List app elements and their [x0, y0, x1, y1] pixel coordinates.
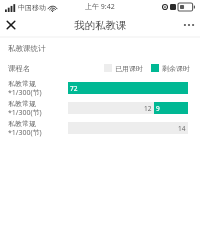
staticText: 私教常规*1/300(节) — [8, 119, 64, 138]
staticText: 12 — [144, 104, 152, 113]
staticText: 私教课统计 — [8, 44, 46, 53]
button[interactable]: 私教常规*1/300(节) — [0, 118, 200, 138]
staticText: 剩余课时 — [162, 64, 190, 73]
button[interactable]: 私教常规*1/300(节) — [0, 78, 200, 98]
button[interactable]: 私教常规*1/300(节) — [0, 98, 200, 118]
staticText: 中国移动 — [18, 3, 46, 12]
button[interactable]: Close — [0, 14, 22, 36]
staticText: 私教常规*1/300(节) — [8, 99, 64, 118]
staticText: 上午 9:42 — [85, 2, 115, 12]
staticText: 私教常规*1/300(节) — [8, 79, 64, 98]
staticText: 9 — [156, 104, 160, 113]
staticText: 我的私教课 — [74, 19, 127, 32]
button[interactable]: More options — [178, 14, 200, 36]
staticText: 课程名 — [8, 64, 31, 73]
staticText: 14 — [178, 124, 186, 133]
staticText: 已用课时 — [115, 64, 143, 73]
staticText: 72 — [70, 84, 78, 93]
